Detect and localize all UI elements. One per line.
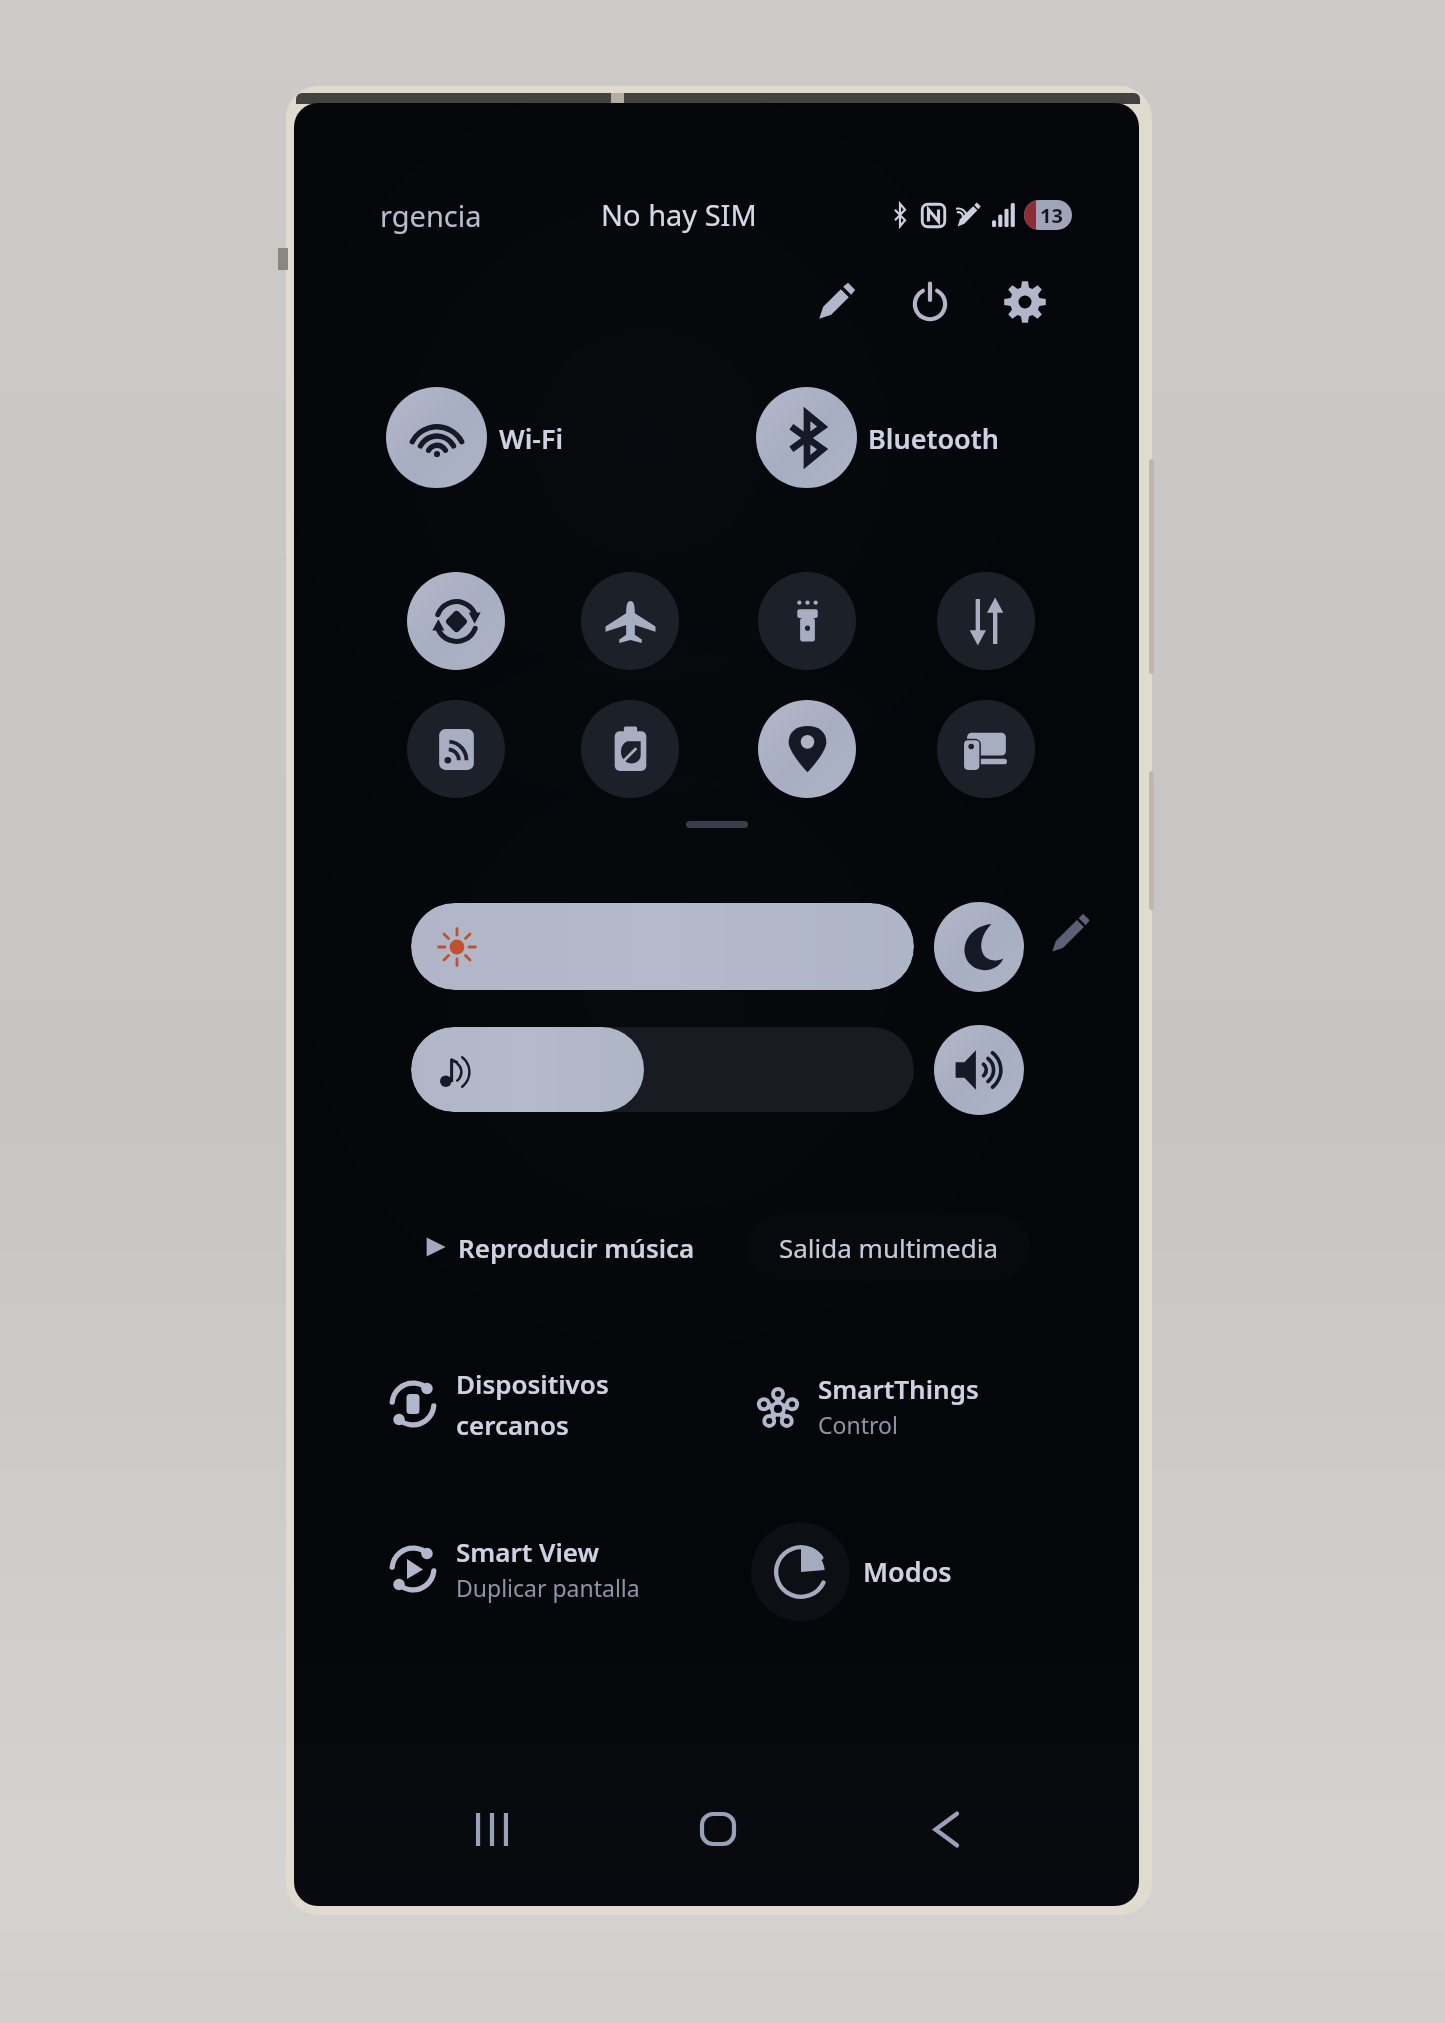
staticText: Bluetooth	[868, 420, 999, 457]
button[interactable]: Flashlight	[758, 572, 856, 670]
button[interactable]: Sound mode	[934, 1025, 1024, 1115]
button[interactable]: Auto rotate	[407, 572, 505, 670]
button[interactable]: Settings	[993, 270, 1057, 334]
button[interactable]: Do not disturb	[934, 902, 1024, 992]
button[interactable]: Brightness	[411, 903, 914, 990]
button[interactable]: Salida multimedia	[748, 1214, 1030, 1280]
button[interactable]: Wi-Fi	[386, 387, 487, 488]
button[interactable]: SmartThings	[754, 1353, 1094, 1458]
button[interactable]: Recents	[462, 1799, 522, 1859]
button[interactable]: Edit quick settings	[804, 270, 868, 334]
staticText: Wi-Fi	[499, 420, 564, 457]
button[interactable]: Power	[898, 270, 962, 334]
staticText: Reproducir música	[458, 1230, 695, 1265]
staticText: Duplicar pantalla	[456, 1572, 640, 1603]
button[interactable]: Airplane mode	[581, 572, 679, 670]
button[interactable]: Mobile data	[937, 572, 1035, 670]
staticText: Dispositivos	[456, 1366, 609, 1401]
button[interactable]: Home	[688, 1799, 748, 1859]
staticText: 13	[1040, 202, 1063, 229]
staticText: Smart View	[456, 1534, 600, 1569]
button[interactable]: Modos	[751, 1519, 1091, 1624]
staticText: cercanos	[456, 1407, 569, 1442]
staticText: SmartThings	[818, 1371, 979, 1406]
button[interactable]: Link to Windows	[937, 700, 1035, 798]
staticText: Salida multimedia	[779, 1230, 999, 1265]
button[interactable]: Back	[916, 1799, 976, 1859]
button[interactable]: Bluetooth	[756, 387, 857, 488]
button[interactable]: Volume	[411, 1027, 914, 1112]
staticText: rgencia	[380, 196, 482, 235]
button[interactable]: Dispositivos	[388, 1351, 728, 1456]
staticText: Control	[818, 1409, 898, 1440]
button[interactable]: Location	[758, 700, 856, 798]
button[interactable]: Edit brightness	[1040, 905, 1098, 963]
staticText: No hay SIM	[601, 195, 757, 234]
button[interactable]: Mobile hotspot	[407, 700, 505, 798]
button[interactable]: Reproducir música	[421, 1218, 695, 1276]
staticText: Modos	[863, 1553, 952, 1590]
button[interactable]: Smart View	[388, 1516, 728, 1621]
button[interactable]: Power saving	[581, 700, 679, 798]
